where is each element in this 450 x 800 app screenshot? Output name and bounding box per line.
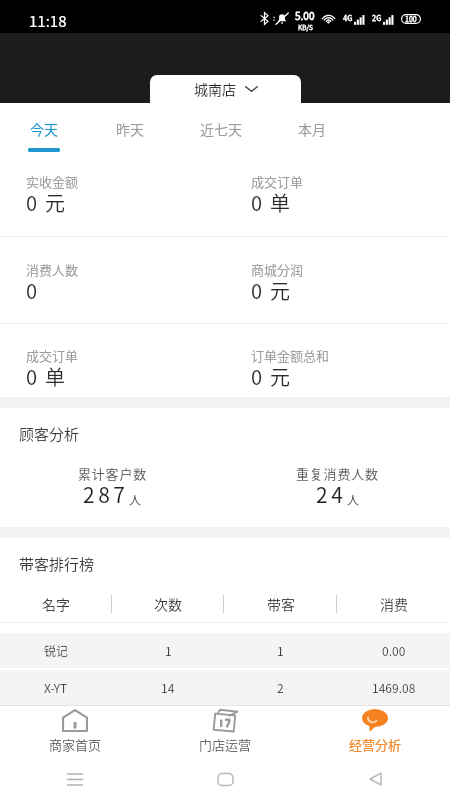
staticText: 实收金额 bbox=[26, 172, 79, 191]
staticText: 0 bbox=[251, 362, 263, 391]
staticText: 元 bbox=[270, 276, 290, 305]
staticText: 24 bbox=[316, 479, 347, 509]
staticText: 商家首页 bbox=[49, 735, 102, 754]
button[interactable]: Home bbox=[150, 758, 300, 800]
staticText: 2 bbox=[277, 679, 284, 696]
staticText: 1 bbox=[277, 642, 284, 659]
button[interactable]: 实收金额 bbox=[0, 155, 225, 236]
staticText: 成交订单 bbox=[26, 346, 79, 365]
staticText: 门店运营 bbox=[199, 735, 252, 754]
staticText: KB/S bbox=[298, 22, 313, 31]
staticText: 本月 bbox=[298, 119, 326, 139]
staticText: 商城分润 bbox=[251, 260, 304, 279]
button[interactable]: Back bbox=[300, 758, 450, 800]
staticText: 带客排行榜 bbox=[19, 553, 95, 575]
staticText: 经营分析 bbox=[349, 735, 402, 754]
staticText: 11:18 bbox=[29, 10, 67, 32]
button[interactable]: 城南店 bbox=[150, 75, 301, 103]
staticText: 重复消费人数 bbox=[296, 464, 379, 483]
staticText: 5.00 bbox=[295, 8, 315, 22]
staticText: 元 bbox=[45, 188, 65, 217]
staticText: 城南店 bbox=[194, 79, 236, 99]
staticText: 累计客户数 bbox=[78, 464, 148, 483]
button[interactable]: 本月 bbox=[298, 103, 326, 155]
staticText: 昨天 bbox=[116, 119, 144, 139]
staticText: 0.00 bbox=[382, 642, 406, 659]
staticText: 2G bbox=[372, 12, 382, 23]
staticText: 带客 bbox=[267, 594, 295, 614]
staticText: 287 bbox=[83, 479, 129, 509]
staticText: 4G bbox=[343, 12, 353, 23]
staticText: 消费人数 bbox=[26, 260, 79, 279]
staticText: 单 bbox=[45, 362, 65, 391]
button[interactable]: 昨天 bbox=[116, 103, 144, 155]
staticText: 元 bbox=[270, 362, 290, 391]
staticText: X-YT bbox=[44, 679, 68, 696]
button[interactable]: Recent apps bbox=[0, 758, 150, 800]
staticText: 人 bbox=[129, 491, 142, 508]
button[interactable]: 订单金额总和 bbox=[225, 324, 450, 397]
button[interactable]: 消费人数 bbox=[0, 237, 225, 323]
staticText: 人 bbox=[347, 491, 360, 508]
button[interactable]: 重复消费人数 bbox=[225, 464, 450, 513]
staticText: 1469.08 bbox=[372, 679, 416, 696]
button[interactable]: 成交订单 bbox=[225, 155, 450, 236]
button[interactable]: 成交订单 bbox=[0, 324, 225, 397]
button[interactable]: 门店运营 bbox=[150, 706, 300, 758]
staticText: 0 bbox=[251, 276, 263, 305]
button[interactable]: 今天 bbox=[28, 103, 60, 155]
staticText: 14 bbox=[161, 679, 175, 696]
staticText: 今天 bbox=[30, 119, 58, 139]
staticText: 0 bbox=[26, 188, 38, 217]
staticText: 次数 bbox=[154, 594, 182, 614]
button[interactable]: 经营分析 bbox=[300, 706, 450, 758]
staticText: 0 bbox=[26, 276, 38, 305]
staticText: 100 bbox=[405, 14, 417, 24]
staticText: 1 bbox=[165, 642, 172, 659]
button[interactable]: X-YT bbox=[0, 670, 450, 705]
button[interactable]: 近七天 bbox=[200, 103, 242, 155]
button[interactable]: 累计客户数 bbox=[0, 464, 225, 513]
staticText: 近七天 bbox=[200, 119, 242, 139]
button[interactable]: 商家首页 bbox=[0, 706, 150, 758]
staticText: 名字 bbox=[42, 594, 70, 614]
button[interactable]: 商城分润 bbox=[225, 237, 450, 323]
staticText: 成交订单 bbox=[251, 172, 304, 191]
staticText: 顾客分析 bbox=[19, 423, 80, 445]
staticText: 订单金额总和 bbox=[251, 346, 330, 365]
staticText: 0 bbox=[251, 188, 263, 217]
staticText: 单 bbox=[270, 188, 290, 217]
button[interactable]: 锐记 bbox=[0, 633, 450, 668]
staticText: 消费 bbox=[380, 594, 408, 614]
staticText: 0 bbox=[26, 362, 38, 391]
staticText: 锐记 bbox=[44, 642, 69, 659]
